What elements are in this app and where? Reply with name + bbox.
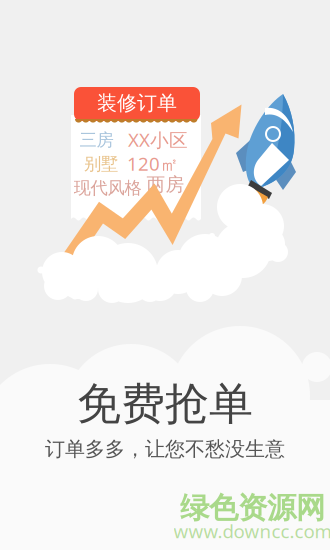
staticText: 三房 <box>79 129 113 151</box>
staticText: XX小区 <box>128 127 188 152</box>
staticText: 装修订单 <box>97 91 177 115</box>
staticText: 120㎡ <box>127 151 179 176</box>
staticText: 订单多多，让您不愁没生意 <box>45 437 285 461</box>
staticText: 两房 <box>146 173 184 196</box>
staticText: 现代风格 <box>73 177 141 199</box>
staticText: 免费抢单 <box>77 377 253 431</box>
staticText: 别墅 <box>84 153 118 175</box>
staticText: 绿色资源网 <box>180 490 325 526</box>
staticText: www.downcc.com <box>173 519 330 543</box>
